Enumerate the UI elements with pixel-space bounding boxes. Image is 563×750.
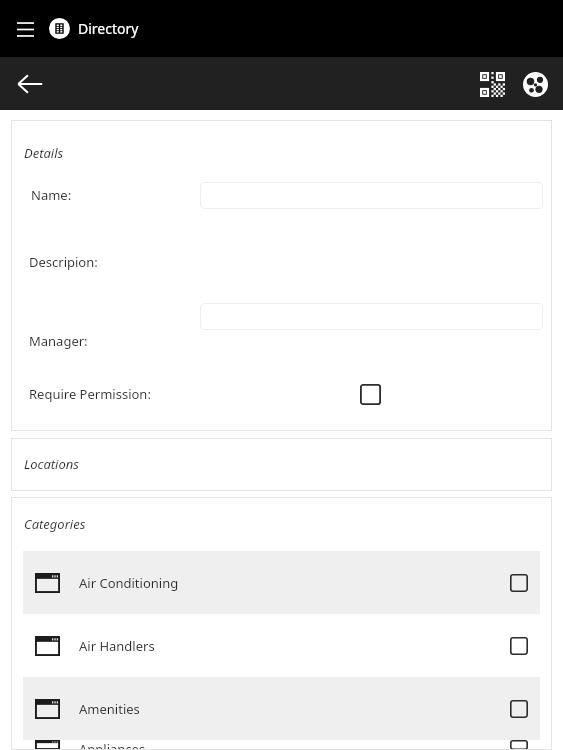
button[interactable]: Text input <box>200 182 543 209</box>
staticText: Descripion: <box>29 253 98 271</box>
staticText: Amenities <box>79 700 140 718</box>
button[interactable]: Air Handlers <box>23 614 540 677</box>
button[interactable]: Text input <box>200 303 543 330</box>
staticText: Directory <box>78 19 139 38</box>
staticText: Name: <box>31 186 72 204</box>
staticText: Details <box>24 144 64 162</box>
button[interactable]: Air Conditioning <box>23 551 540 614</box>
staticText: Manager: <box>29 332 88 350</box>
staticText: Categories <box>24 515 86 533</box>
button[interactable]: Open navigation menu <box>8 12 42 46</box>
button[interactable]: Require Permission checkbox <box>355 379 385 409</box>
staticText: Locations <box>24 455 79 473</box>
staticText: Air Conditioning <box>79 574 179 592</box>
button[interactable]: Directory <box>47 12 141 45</box>
staticText: Appliances <box>79 740 146 750</box>
button[interactable]: Appliances <box>23 740 540 750</box>
button[interactable]: Open website <box>516 65 554 103</box>
staticText: Require Permission: <box>29 385 151 403</box>
staticText: Air Handlers <box>79 637 155 655</box>
button[interactable]: Amenities <box>23 677 540 740</box>
button[interactable]: Scan QR code <box>473 65 511 103</box>
button[interactable]: Back <box>9 63 51 105</box>
